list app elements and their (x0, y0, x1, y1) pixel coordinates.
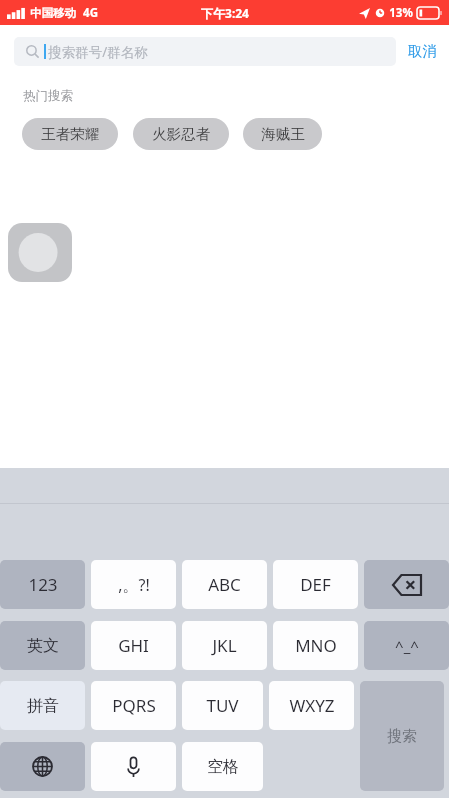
staticText: ABC (208, 573, 241, 596)
staticText: 13% (389, 5, 413, 21)
staticText: PQRS (112, 694, 156, 717)
button[interactable]: Voice input (91, 742, 176, 791)
button[interactable]: 空格 (182, 742, 263, 791)
staticText: 4G (83, 5, 98, 21)
staticText: WXYZ (289, 694, 335, 717)
staticText: 123 (28, 573, 58, 596)
staticText: TUV (206, 694, 239, 717)
staticText: 中国移动 (30, 6, 76, 20)
staticText: 英文 (27, 636, 59, 656)
button[interactable]: ,。?! (91, 560, 176, 609)
button[interactable]: GHI (91, 621, 176, 670)
staticText: 拼音 (27, 696, 59, 716)
button[interactable]: Switch keyboard (0, 742, 85, 791)
button[interactable]: App icon (8, 223, 72, 282)
button[interactable]: 英文 (0, 621, 85, 670)
staticText: 搜索 (387, 727, 417, 746)
button[interactable]: PQRS (91, 681, 176, 730)
button[interactable]: JKL (182, 621, 267, 670)
button[interactable]: 搜索群号/群名称 (14, 37, 396, 66)
button[interactable]: TUV (182, 681, 263, 730)
staticText: 取消 (408, 42, 437, 60)
staticText: 火影忍者 (152, 125, 210, 143)
button[interactable]: 火影忍者 (133, 118, 229, 150)
button[interactable]: ABC (182, 560, 267, 609)
staticText: ,。?! (118, 574, 150, 596)
staticText: 下午3:24 (201, 5, 249, 21)
button[interactable]: WXYZ (269, 681, 354, 730)
staticText: DEF (300, 573, 331, 596)
staticText: 海贼王 (261, 125, 305, 143)
staticText: MNO (295, 634, 337, 657)
button[interactable]: 王者荣耀 (22, 118, 118, 150)
staticText: 王者荣耀 (41, 125, 99, 143)
staticText: 热门搜索 (23, 88, 73, 104)
button[interactable]: 123 (0, 560, 85, 609)
staticText: GHI (118, 634, 149, 657)
staticText: 搜索群号/群名称 (48, 43, 148, 61)
button[interactable]: 海贼王 (243, 118, 322, 150)
button[interactable]: DEF (273, 560, 358, 609)
button[interactable]: 拼音 (0, 681, 85, 730)
staticText: ^_^ (395, 636, 419, 656)
button[interactable]: Backspace (364, 560, 449, 609)
button[interactable]: ^_^ (364, 621, 449, 670)
staticText: 空格 (207, 757, 239, 777)
button[interactable]: 取消 (396, 36, 449, 66)
staticText: JKL (212, 634, 237, 657)
button[interactable]: 搜索 (360, 681, 444, 791)
button[interactable]: MNO (273, 621, 358, 670)
